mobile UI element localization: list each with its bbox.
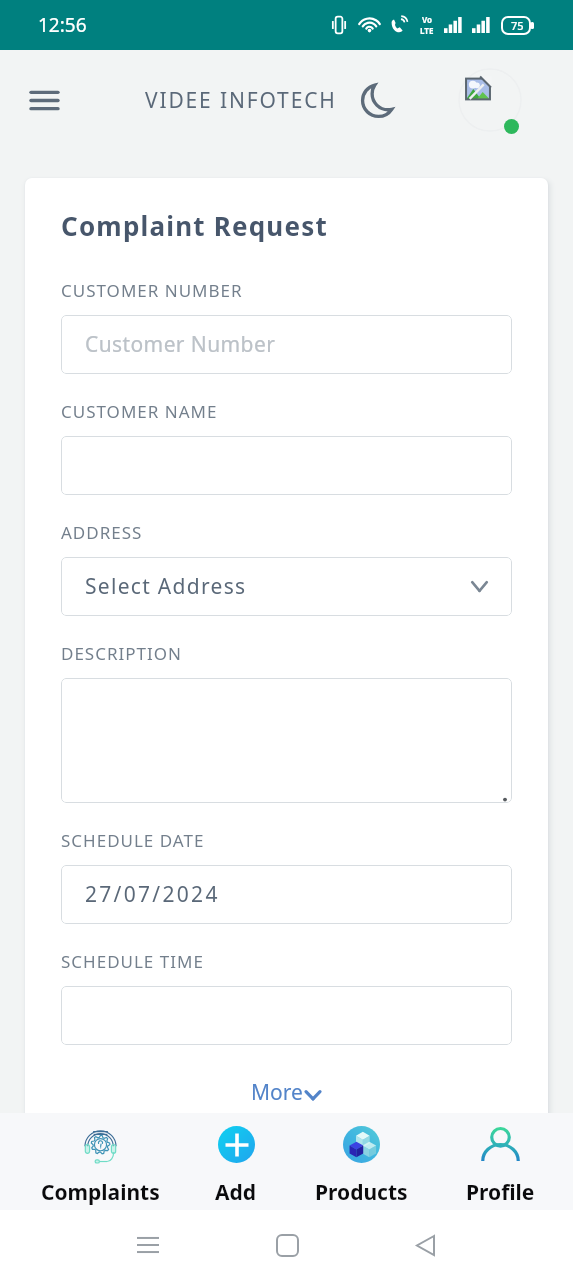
staticText: Customer Number xyxy=(85,330,276,359)
staticText: CUSTOMER NUMBER xyxy=(61,279,243,302)
staticText: Add xyxy=(215,1178,257,1207)
staticText: CUSTOMER NAME xyxy=(61,400,218,423)
staticText: Products xyxy=(315,1178,408,1207)
staticText: LTE xyxy=(420,25,434,36)
button[interactable] xyxy=(61,986,512,1045)
staticText: SCHEDULE DATE xyxy=(61,829,205,852)
button[interactable]: Products xyxy=(281,1113,441,1207)
staticText: More xyxy=(251,1078,303,1107)
staticText: ADDRESS xyxy=(61,521,143,544)
staticText: Vo xyxy=(422,14,433,25)
button[interactable]: Profile xyxy=(420,1113,573,1207)
button[interactable]: Select Address xyxy=(61,557,512,616)
staticText: 12:56 xyxy=(38,12,87,38)
staticText: Complaints xyxy=(41,1178,160,1207)
button[interactable]: Add xyxy=(156,1113,316,1207)
staticText: DESCRIPTION xyxy=(61,642,182,665)
button[interactable] xyxy=(61,678,512,803)
button[interactable]: More xyxy=(61,1078,512,1107)
button[interactable]: Account profile xyxy=(458,68,522,132)
staticText: Complaint Request xyxy=(61,208,328,243)
button[interactable]: Customer Number xyxy=(61,315,512,374)
button[interactable] xyxy=(61,436,512,495)
staticText: Profile xyxy=(466,1178,535,1207)
button[interactable]: Home xyxy=(263,1221,311,1269)
staticText: 27/07/2024 xyxy=(85,880,220,909)
button[interactable]: Back xyxy=(401,1221,449,1269)
staticText: SCHEDULE TIME xyxy=(61,950,204,973)
button[interactable]: Toggle dark mode xyxy=(354,76,402,124)
staticText: Select Address xyxy=(85,572,247,601)
button[interactable]: 27/07/2024 xyxy=(61,865,512,924)
button[interactable]: Open navigation menu xyxy=(20,76,68,124)
button[interactable]: Recent apps xyxy=(124,1221,172,1269)
staticText: VIDEE INFOTECH xyxy=(145,86,337,115)
button[interactable]: Complaints xyxy=(20,1113,180,1207)
staticText: 75 xyxy=(511,18,524,33)
